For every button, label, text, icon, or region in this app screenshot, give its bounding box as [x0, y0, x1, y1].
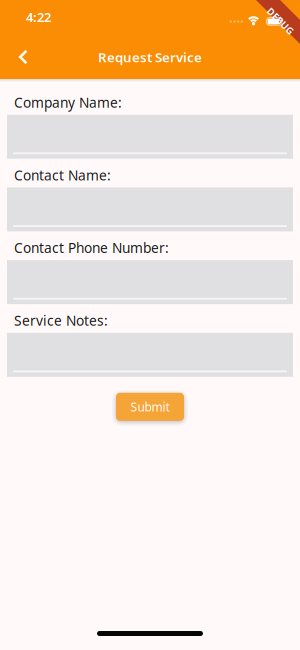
staticText: Service Notes: [14, 311, 108, 330]
button[interactable]: Contact Phone Number: [7, 260, 293, 304]
staticText: Submit [130, 399, 169, 415]
staticText: Contact Name: [14, 166, 111, 184]
staticText: Request Service [98, 48, 202, 66]
button[interactable]: Back [0, 38, 38, 75]
button[interactable]: Submit [116, 393, 184, 421]
button[interactable]: Company Name: [7, 115, 293, 159]
staticText: Contact Phone Number: [14, 238, 169, 257]
staticText: 4:22 [26, 8, 51, 26]
button[interactable]: Contact Name: [7, 187, 293, 231]
button[interactable]: Service Notes: [7, 333, 293, 377]
staticText: DEBUG [264, 14, 297, 28]
staticText: Company Name: [14, 93, 122, 112]
